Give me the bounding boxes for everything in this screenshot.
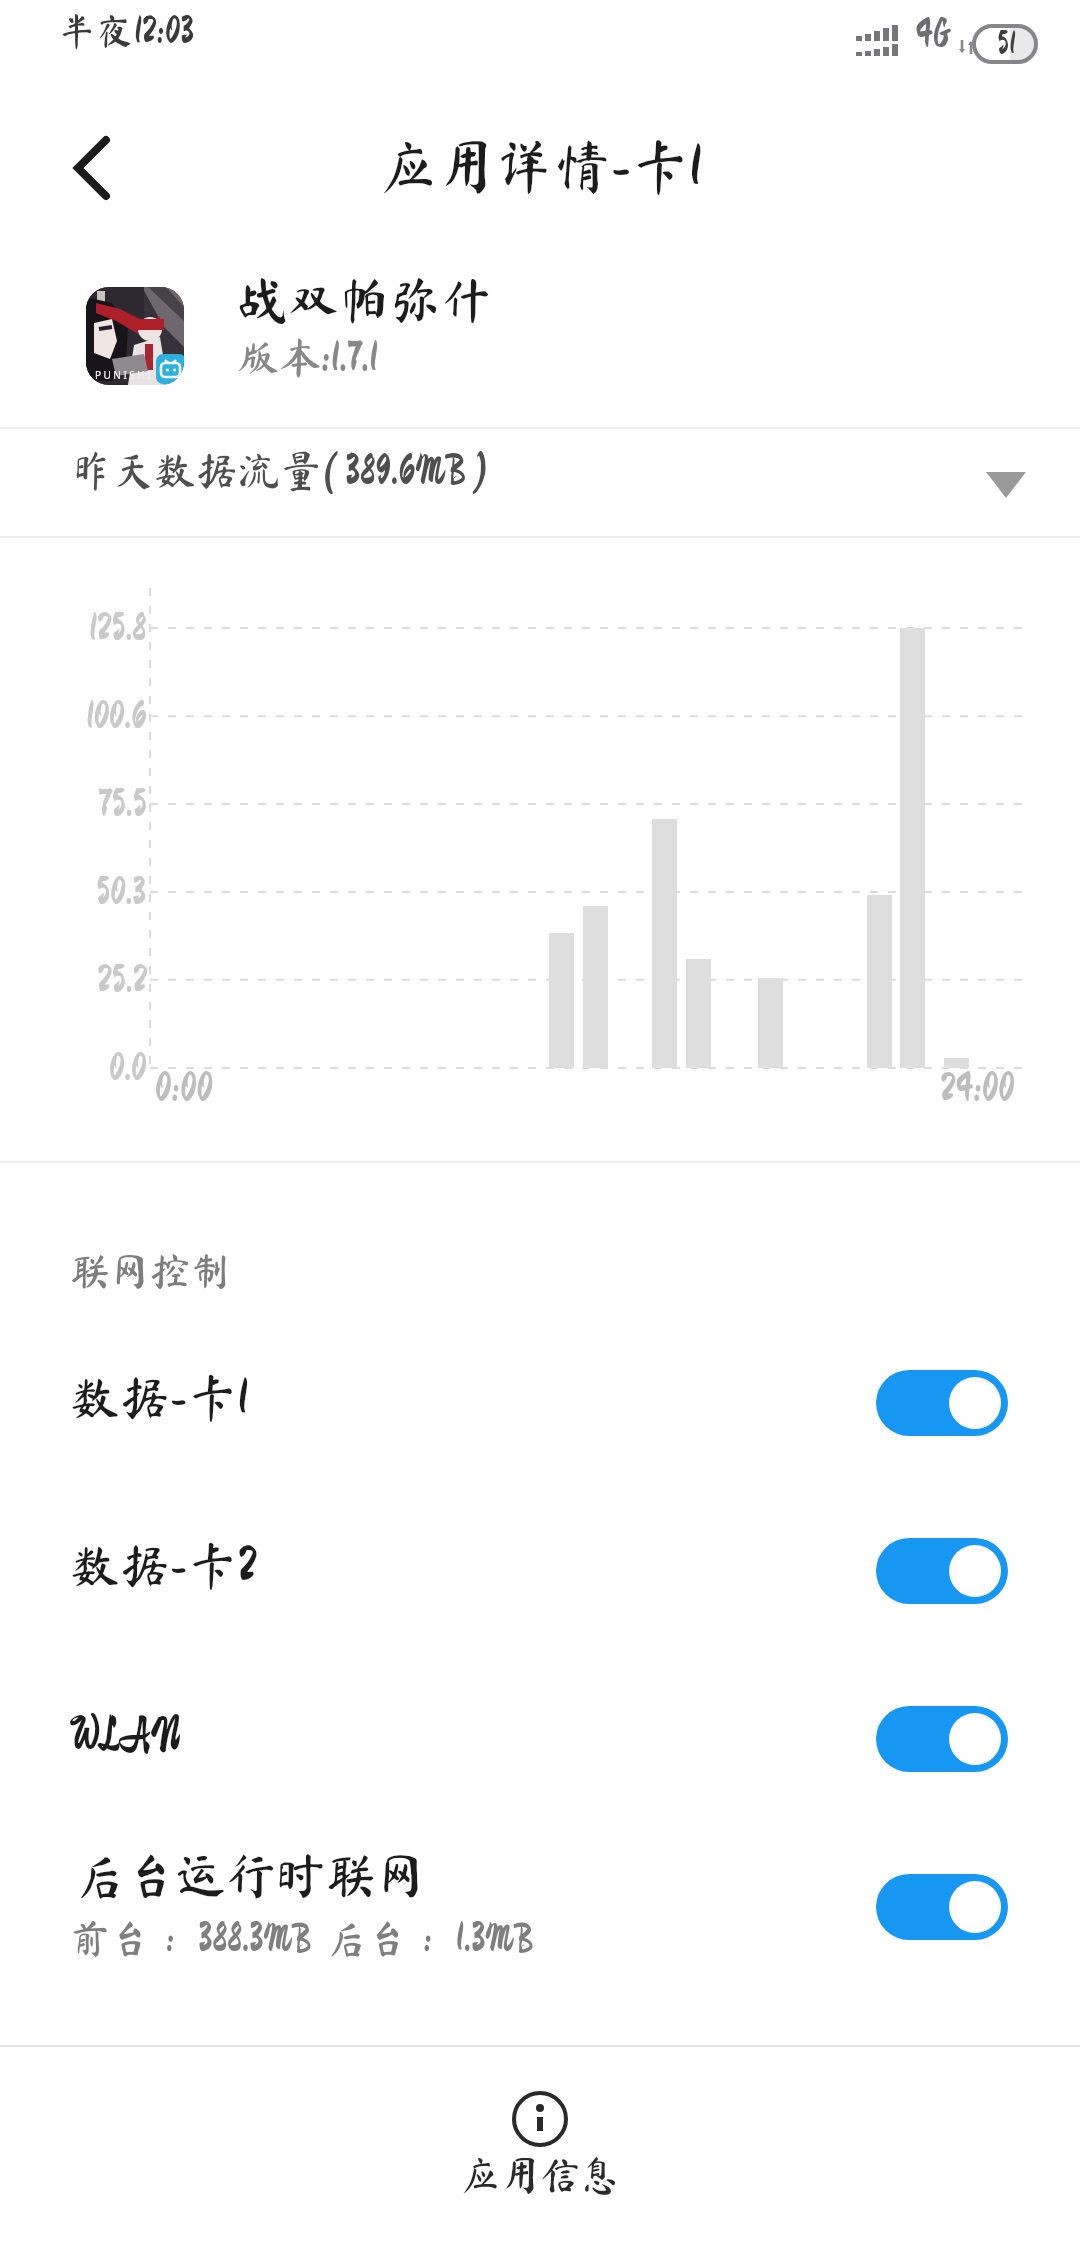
button[interactable]	[876, 1874, 1008, 1940]
button[interactable]	[876, 1706, 1008, 1772]
staticText: 24:00	[940, 1068, 1015, 1108]
button[interactable]: 应用信息	[0, 2047, 1080, 2244]
staticText: 战双帕弥什	[237, 274, 493, 325]
button[interactable]: 数据-卡2	[0, 1500, 1080, 1640]
staticText: 50.3	[96, 873, 147, 911]
button[interactable]: 数据-卡1	[0, 1332, 1080, 1472]
button[interactable]: 后台运行时联网	[0, 1830, 1080, 1990]
staticText: 数据-卡1	[70, 1372, 248, 1422]
staticText: 51	[997, 28, 1016, 60]
staticText: 数据-卡2	[70, 1540, 257, 1590]
button[interactable]	[876, 1370, 1008, 1436]
staticText: 应用信息	[460, 2155, 620, 2195]
button[interactable]: WLAN	[0, 1669, 1080, 1809]
staticText: 4G	[915, 14, 951, 54]
button[interactable]: 昨天数据流量( 389.6MB )	[0, 429, 1080, 536]
staticText: 应用详情-卡1	[379, 137, 702, 195]
staticText: 75.5	[98, 785, 147, 823]
staticText: WLAN	[70, 1709, 181, 1759]
staticText: 0.0	[109, 1049, 147, 1087]
staticText: 昨天数据流量( 389.6MB )	[70, 449, 489, 491]
staticText: 100.6	[86, 697, 147, 735]
staticText: 版本:1.7.1	[237, 336, 378, 378]
staticText: PUNISHI	[95, 368, 154, 382]
staticText: 125.8	[89, 609, 147, 647]
staticText: 25.2	[97, 961, 147, 999]
staticText: 后台运行时联网	[76, 1850, 426, 1900]
staticText: 半夜12:03	[58, 12, 194, 50]
button[interactable]	[876, 1538, 1008, 1604]
staticText: 0:00	[155, 1068, 213, 1108]
button[interactable]	[52, 128, 132, 208]
staticText: 联网控制	[70, 1251, 230, 1291]
staticText: 前台： 388.3MB 后台： 1.3MB	[70, 1918, 533, 1958]
